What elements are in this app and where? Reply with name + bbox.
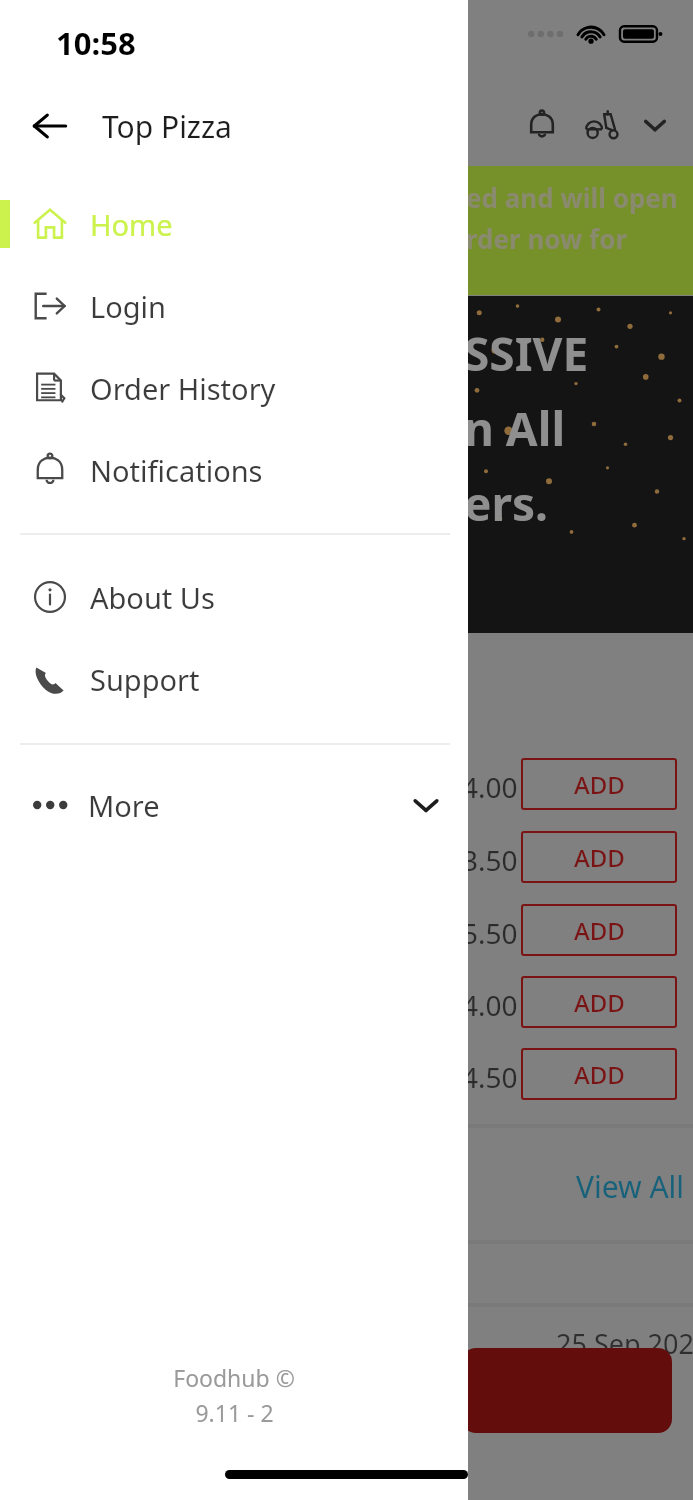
staticText: More (88, 786, 160, 825)
button[interactable]: Back (22, 98, 78, 154)
staticText: Support (90, 660, 200, 699)
staticText: ADD (574, 1058, 625, 1091)
button[interactable]: ADD (521, 904, 677, 956)
button[interactable]: Delivery (580, 103, 624, 147)
button[interactable]: ADD (521, 831, 677, 883)
button[interactable] (462, 1348, 672, 1433)
staticText: Order History (90, 369, 276, 408)
staticText: ADD (574, 986, 625, 1019)
button[interactable]: ADD (521, 976, 677, 1028)
staticText: 4.50 (462, 1058, 518, 1096)
staticText: n All (464, 397, 566, 460)
staticText: Top Pizza (102, 106, 232, 147)
button[interactable]: Login (0, 277, 468, 335)
staticText: ers. (464, 472, 549, 535)
staticText: ed and will open (466, 180, 678, 215)
button[interactable]: Notifications (520, 103, 564, 147)
staticText: Notifications (90, 451, 263, 490)
staticText: 3.50 (462, 841, 518, 879)
button[interactable]: ADD (521, 758, 677, 810)
staticText: Login (90, 287, 166, 326)
button[interactable]: View All (570, 1160, 691, 1213)
staticText: SSIVE (464, 322, 589, 385)
staticText: 4.00 (462, 986, 518, 1024)
staticText: 5.50 (462, 914, 518, 952)
staticText: 4.00 (462, 768, 518, 806)
button[interactable]: Support (0, 650, 468, 708)
staticText: ADD (574, 914, 625, 947)
button[interactable]: Order History (0, 359, 468, 417)
staticText: ADD (574, 841, 625, 874)
staticText: rder now for (466, 221, 628, 256)
staticText: Home (90, 205, 173, 244)
button[interactable]: Expand (634, 104, 676, 146)
staticText: ADD (574, 768, 625, 801)
staticText: 10:58 (56, 22, 136, 64)
staticText: Foodhub © (173, 1362, 295, 1393)
button[interactable]: More (0, 777, 468, 833)
staticText: About Us (90, 578, 215, 617)
staticText: View All (576, 1166, 685, 1207)
staticText: 9.11 - 2 (195, 1397, 274, 1428)
button[interactable]: Notifications (0, 441, 468, 499)
button[interactable]: ADD (521, 1048, 677, 1100)
button[interactable]: About Us (0, 568, 468, 626)
staticText: 25 Sep 2021 (556, 1325, 693, 1362)
button[interactable]: Home (0, 195, 468, 253)
